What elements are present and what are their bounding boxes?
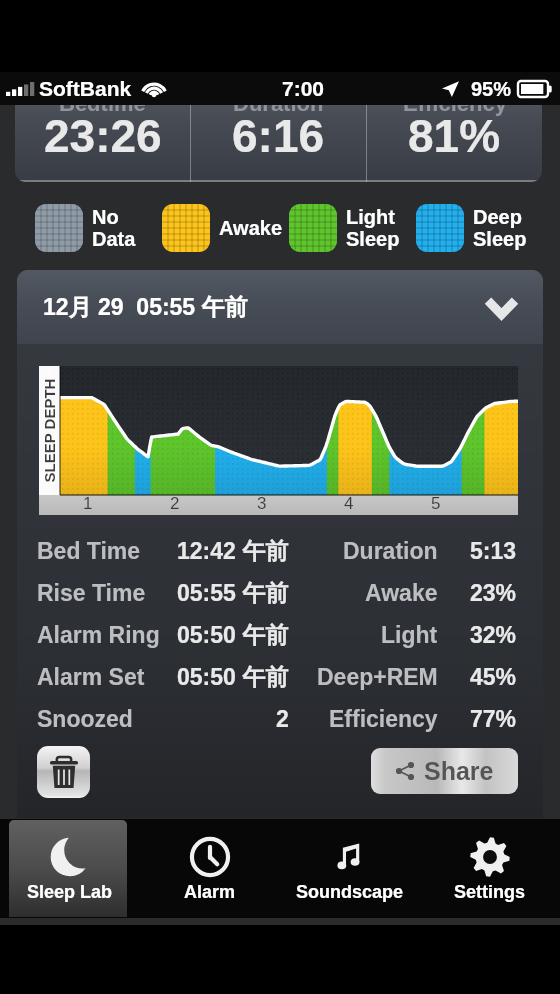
staticText: 81% xyxy=(408,110,501,161)
staticText: 12:42 午前 xyxy=(177,537,289,566)
staticText: 23:26 xyxy=(44,110,162,161)
staticText: 5:13 xyxy=(470,538,517,564)
button[interactable]: Share xyxy=(371,748,518,794)
staticText: 32% xyxy=(470,622,517,648)
staticText: 1 xyxy=(83,494,93,513)
staticText: SoftBank xyxy=(39,77,132,100)
staticText: Sleep xyxy=(346,228,400,250)
staticText: 6:16 xyxy=(232,110,325,161)
button[interactable]: Settings xyxy=(420,818,560,918)
other: Expand xyxy=(488,299,515,316)
staticText: 12月 29 05:55 午前 xyxy=(43,293,248,322)
staticText: 4 xyxy=(344,494,354,513)
staticText: Share xyxy=(424,757,494,785)
staticText: Light xyxy=(346,206,395,228)
staticText: 05:50 午前 xyxy=(177,621,289,650)
staticText: Alarm Set xyxy=(37,664,145,690)
staticText: 45% xyxy=(470,664,517,690)
staticText: 95% xyxy=(471,78,512,100)
staticText: Snoozed xyxy=(37,706,133,732)
staticText: Bedtime xyxy=(59,91,146,116)
staticText: 23% xyxy=(470,580,517,606)
staticText: 77% xyxy=(470,706,517,732)
staticText: Awake xyxy=(219,217,283,239)
staticText: Soundscape xyxy=(296,882,404,902)
staticText: 5 xyxy=(431,494,441,513)
staticText: Sleep Lab xyxy=(27,882,113,902)
staticText: Awake xyxy=(365,580,438,606)
staticText: Duration xyxy=(233,91,324,116)
staticText: 2 xyxy=(276,706,289,732)
button[interactable]: 12月 29 05:55 午前 xyxy=(17,270,543,344)
staticText: Duration xyxy=(343,538,438,564)
staticText: Alarm xyxy=(184,882,236,902)
staticText: Efficiency xyxy=(329,706,438,732)
button[interactable]: Sleep Lab xyxy=(0,818,140,918)
staticText: Bed Time xyxy=(37,538,141,564)
staticText: Settings xyxy=(454,882,526,902)
staticText: Efficiency xyxy=(403,91,507,116)
button[interactable]: Alarm xyxy=(140,818,280,918)
staticText: 05:55 午前 xyxy=(177,579,289,608)
staticText: Sleep xyxy=(473,228,527,250)
staticText: Light xyxy=(381,622,438,648)
staticText: 2 xyxy=(170,494,180,513)
staticText: No xyxy=(92,206,119,228)
staticText: 05:50 午前 xyxy=(177,663,289,692)
button[interactable]: Soundscape xyxy=(280,818,420,918)
staticText: 7:00 xyxy=(282,77,325,100)
staticText: Deep xyxy=(473,206,522,228)
staticText: 3 xyxy=(257,494,267,513)
staticText: Rise Time xyxy=(37,580,146,606)
staticText: Data xyxy=(92,228,136,250)
button[interactable]: Delete xyxy=(37,746,90,798)
staticText: Deep+REM xyxy=(317,664,438,690)
staticText: Alarm Ring xyxy=(37,622,160,648)
